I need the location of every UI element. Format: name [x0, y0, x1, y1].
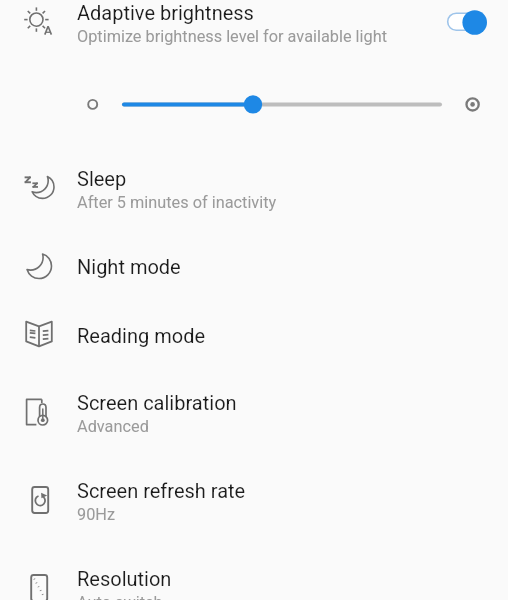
staticText: Screen calibration	[77, 391, 237, 414]
button[interactable]: Screen refresh rate	[0, 456, 508, 544]
staticText: Advanced	[77, 417, 149, 436]
staticText: Sleep	[77, 167, 127, 190]
staticText: Screen refresh rate	[77, 479, 246, 502]
staticText: Auto switch	[77, 593, 163, 600]
button[interactable]: Screen calibration	[0, 368, 508, 456]
staticText: Night mode	[77, 255, 181, 278]
button[interactable]: Sleep	[0, 144, 508, 232]
staticText: Resolution	[77, 567, 172, 590]
staticText: Optimize brightness level for available …	[77, 27, 387, 46]
staticText: After 5 minutes of inactivity	[77, 193, 277, 212]
button[interactable]: Resolution	[0, 544, 508, 600]
staticText: Adaptive brightness	[77, 1, 254, 24]
button[interactable]: Night mode	[0, 232, 508, 300]
staticText: Reading mode	[77, 324, 206, 347]
button[interactable]: Adaptive brightness	[0, 0, 508, 44]
button[interactable]: Reading mode	[0, 300, 508, 368]
button[interactable]: Adaptive brightness toggle	[429, 1, 493, 55]
staticText: 90Hz	[77, 505, 116, 524]
